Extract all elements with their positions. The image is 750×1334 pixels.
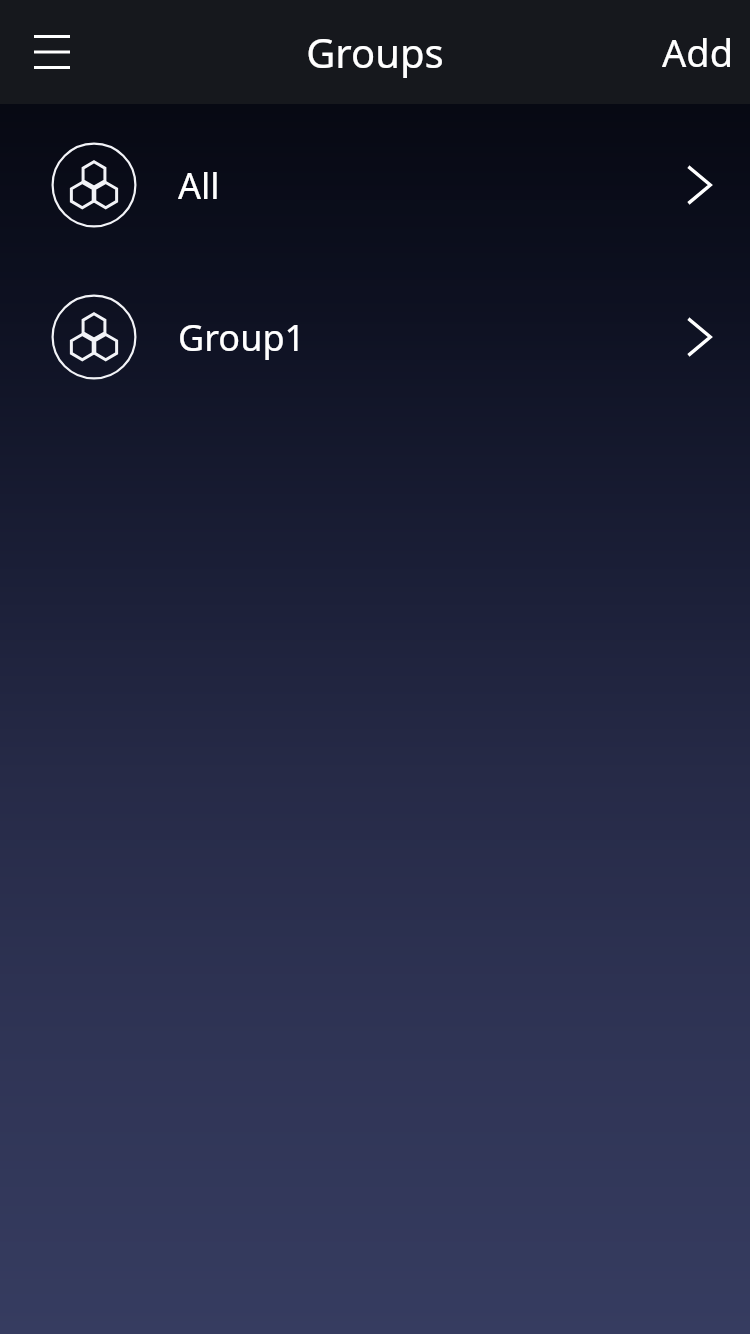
button[interactable]: Menu (0, 0, 104, 104)
button[interactable]: Add (630, 0, 750, 104)
staticText: Groups (306, 25, 444, 79)
button[interactable]: Group1 (0, 294, 750, 380)
staticText: Add (662, 26, 734, 78)
staticText: Group1 (178, 313, 306, 362)
button[interactable]: All (0, 142, 750, 228)
staticText: All (178, 161, 220, 210)
